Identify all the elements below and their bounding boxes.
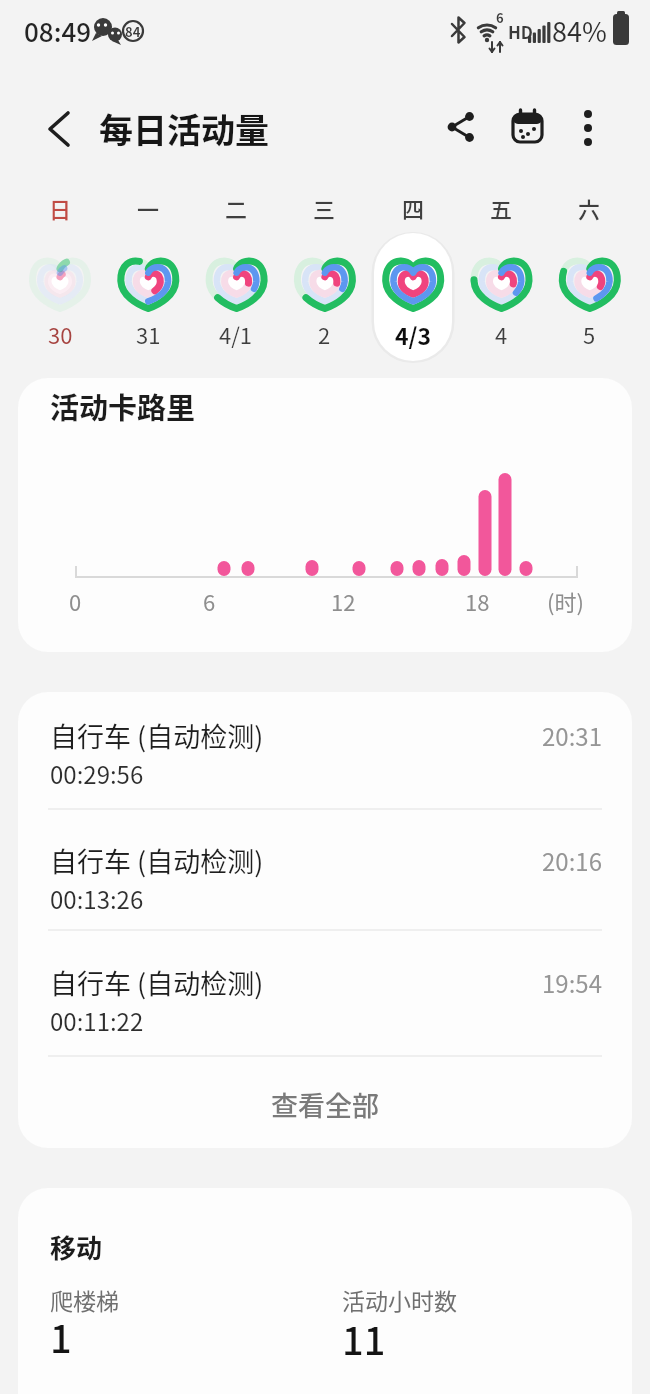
button[interactable] (369, 192, 457, 364)
staticText: 查看全部 (271, 1085, 379, 1124)
staticText: 三 (313, 192, 336, 224)
staticText: 11 (342, 1311, 386, 1366)
staticText: 00:11:22 (50, 1003, 144, 1038)
button[interactable] (545, 192, 633, 364)
staticText: 一 (137, 192, 160, 224)
staticText: 18 (465, 585, 490, 617)
staticText: 爬楼梯 (50, 1283, 119, 1316)
staticText: 1 (50, 1309, 72, 1364)
staticText: 活动小时数 (342, 1283, 457, 1316)
staticText: 19:54 (542, 965, 602, 1000)
button[interactable] (437, 102, 485, 154)
staticText: 6 (203, 585, 216, 617)
staticText: 自行车 (自动检测) (50, 963, 264, 1002)
staticText: 5 (583, 318, 596, 350)
staticText: 四 (402, 192, 425, 224)
staticText: 84% (552, 11, 607, 50)
button[interactable] (18, 930, 632, 1056)
staticText: 移动 (50, 1228, 103, 1266)
button[interactable] (18, 809, 632, 930)
staticText: 每日活动量 (99, 104, 269, 153)
button[interactable] (457, 192, 545, 364)
staticText: 2 (318, 318, 331, 350)
button[interactable] (18, 692, 632, 809)
button[interactable] (503, 102, 551, 154)
staticText: 六 (578, 192, 601, 224)
staticText: 00:13:26 (50, 881, 144, 916)
staticText: 4 (495, 318, 508, 350)
staticText: 五 (490, 192, 513, 224)
staticText: (时) (547, 585, 584, 617)
staticText: 6 (496, 8, 504, 27)
staticText: HD (508, 19, 534, 44)
staticText: 自行车 (自动检测) (50, 841, 264, 880)
button[interactable] (18, 1056, 632, 1148)
staticText: 二 (225, 192, 248, 224)
staticText: 20:16 (542, 843, 602, 878)
staticText: 31 (136, 318, 161, 350)
staticText: 活动卡路里 (50, 385, 196, 427)
staticText: 12 (331, 585, 356, 617)
button[interactable] (192, 192, 280, 364)
staticText: 日 (49, 192, 72, 224)
staticText: 自行车 (自动检测) (50, 716, 264, 755)
staticText: 20:31 (542, 718, 602, 753)
staticText: 0 (69, 585, 82, 617)
staticText: 08:49 (24, 12, 92, 50)
staticText: 00:29:56 (50, 756, 144, 791)
button[interactable] (280, 192, 368, 364)
button[interactable] (104, 192, 192, 364)
staticText: 30 (48, 318, 73, 350)
staticText: 4/1 (219, 318, 253, 350)
staticText: 84 (125, 22, 141, 41)
staticText: 4/3 (395, 318, 432, 351)
button[interactable] (566, 102, 610, 154)
button[interactable] (16, 192, 104, 364)
button[interactable] (36, 102, 86, 156)
